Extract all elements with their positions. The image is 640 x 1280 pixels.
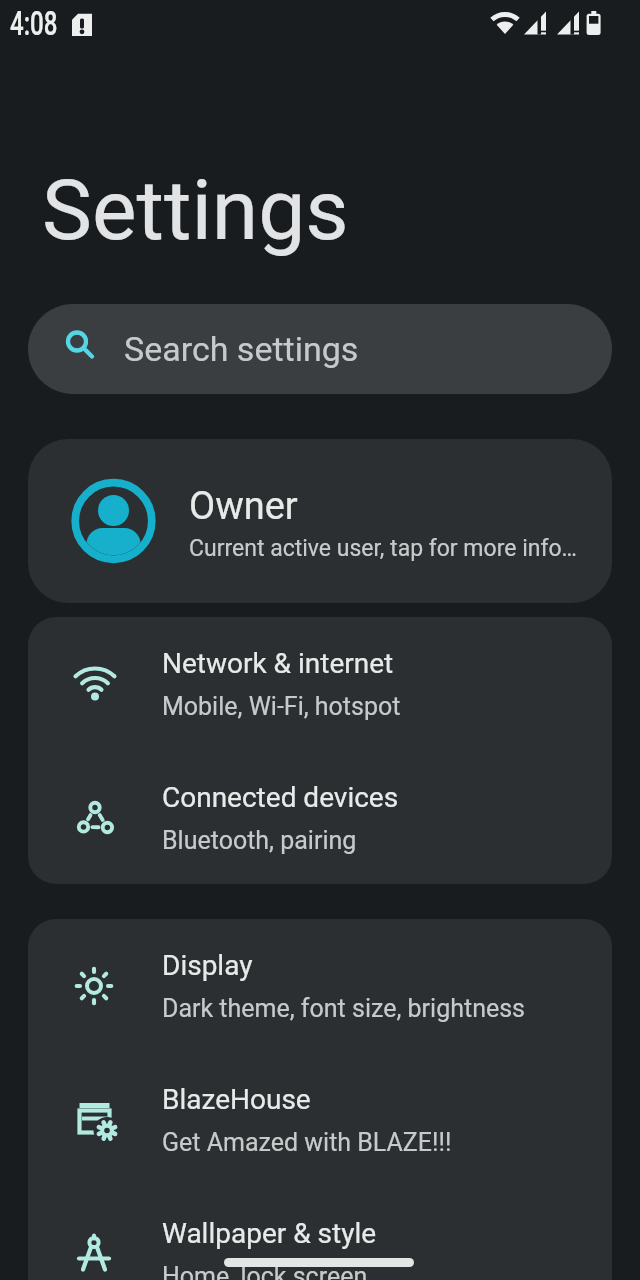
staticText: Home, lock screen	[162, 1262, 368, 1280]
staticText: Get Amazed with BLAZE!!!	[162, 1128, 452, 1157]
button[interactable]: BlazeHouse	[28, 1053, 612, 1187]
staticText: Wallpaper & style	[162, 1217, 377, 1250]
staticText: Dark theme, font size, brightness	[162, 994, 526, 1023]
button[interactable]: Search settings	[28, 304, 612, 394]
staticText: BlazeHouse	[162, 1083, 311, 1116]
staticText: Display	[162, 949, 253, 982]
staticText: Current active user, tap for more info…	[189, 535, 577, 562]
staticText: Owner	[189, 484, 298, 529]
button[interactable]: Owner	[28, 439, 612, 603]
button[interactable]: Network & internet	[28, 617, 612, 751]
staticText: Connected devices	[162, 781, 399, 814]
staticText: Bluetooth, pairing	[162, 826, 357, 855]
button[interactable]: Display	[28, 919, 612, 1053]
staticText: Settings	[42, 161, 349, 259]
staticText: Mobile, Wi-Fi, hotspot	[162, 692, 401, 721]
button[interactable]: Connected devices	[28, 751, 612, 884]
button[interactable]: Wallpaper & style	[28, 1187, 612, 1280]
staticText: 4:08	[10, 4, 58, 43]
staticText: Search settings	[124, 329, 359, 369]
staticText: Network & internet	[162, 647, 394, 680]
